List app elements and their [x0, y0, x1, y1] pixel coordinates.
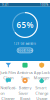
staticText: 9:41: [2, 3, 9, 6]
button[interactable]: Notification: [0, 79, 17, 97]
staticText: Clean: [3, 75, 13, 80]
staticText: Notification: [0, 85, 16, 96]
button[interactable]: Smart Charge: [33, 79, 50, 97]
staticText: 65%: [16, 20, 33, 30]
staticText: Boost: [20, 96, 30, 100]
staticText: Scan: [21, 75, 29, 80]
button[interactable]: Boost now: [17, 48, 33, 53]
staticText: App Lock: [34, 70, 50, 75]
staticText: Boost now: [17, 49, 32, 52]
staticText: Manager: [34, 75, 50, 80]
button[interactable]: Antivirus: [17, 61, 33, 79]
staticText: Smart Charge: [35, 85, 48, 96]
staticText: Antivirus: [17, 70, 33, 75]
button[interactable]: Battery Saver: [17, 79, 33, 97]
staticText: 128 GB available: [13, 42, 36, 45]
staticText: 100%: [40, 3, 48, 6]
staticText: Usage: [36, 96, 47, 100]
button[interactable]: App Lock: [33, 61, 50, 79]
staticText: Battery Saver: [18, 85, 31, 96]
button[interactable]: Junk Files: [0, 61, 17, 79]
staticText: Junk Files: [0, 70, 16, 75]
staticText: Cleaner: [1, 96, 15, 100]
